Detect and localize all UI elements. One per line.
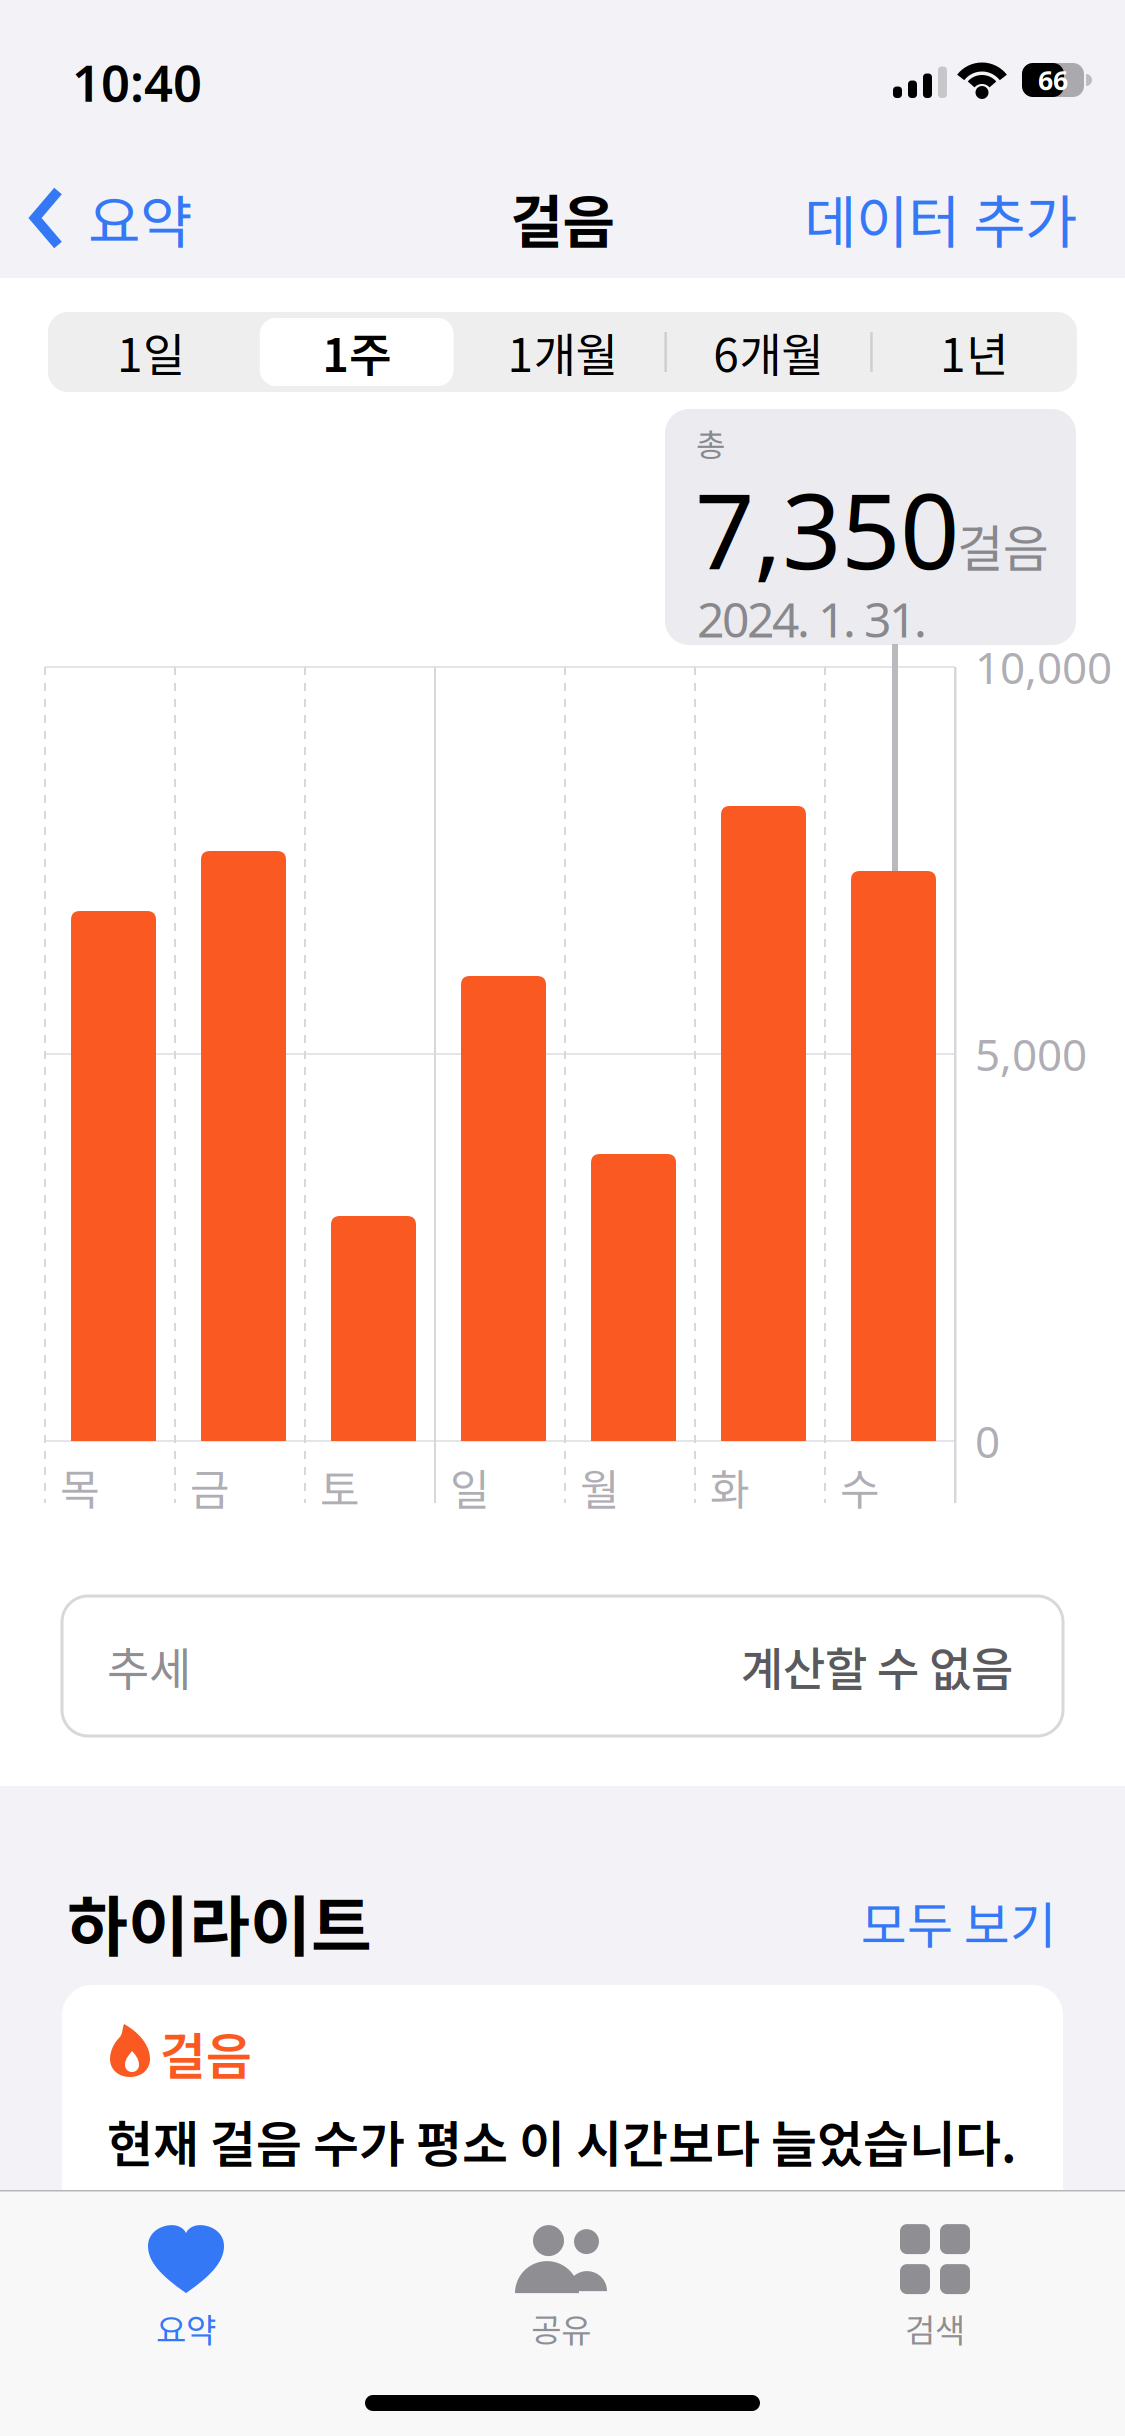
staticText: 6개월 [713,319,823,385]
staticText: 0 [975,1412,1000,1470]
staticText: 요약 [156,2304,216,2352]
staticText: 총 [696,420,725,466]
staticText: 화 [710,1456,750,1518]
staticText: 모두 보기 [861,1886,1056,1958]
staticText: 1일 [117,319,185,385]
button[interactable]: 추세 [62,1596,1063,1736]
staticText: 일 [450,1456,490,1518]
staticText: 2024. 1. 31. [697,587,927,651]
staticText: 1년 [940,319,1008,385]
staticText: 현재 걸음 수가 평소 이 시간보다 늘었습니다. [107,2105,1017,2177]
button[interactable]: 뒤로 요약 [30,172,192,264]
staticText: 걸음 [510,177,614,259]
staticText: 10:40 [72,48,202,116]
button[interactable]: 데이터 추가 [717,172,1077,264]
button[interactable]: 1년 [871,312,1077,392]
button[interactable]: 6개월 [665,312,871,392]
button[interactable]: 모두 보기 [756,1872,1056,1972]
staticText: 추세 [107,1633,191,1699]
staticText: 1개월 [507,319,617,385]
staticText: 수 [840,1456,880,1518]
staticText: 10,000 [975,638,1112,696]
staticText: 토 [320,1456,360,1518]
button[interactable]: 공유 [441,2208,681,2368]
button[interactable]: 1일 [48,312,254,392]
button[interactable]: 1주 [254,312,460,392]
staticText: 1주 [322,319,391,385]
staticText: 5,000 [975,1025,1087,1083]
staticText: 월 [580,1456,620,1518]
staticText: 검색 [905,2304,965,2352]
staticText: 66 [1038,62,1068,98]
staticText: 데이터 추가 [804,177,1077,259]
staticText: 목 [60,1456,100,1518]
button[interactable]: 1개월 [460,312,665,392]
button[interactable]: 걸음 [62,1985,1063,2436]
staticText: 금 [190,1456,230,1518]
staticText: 요약 [88,177,192,259]
staticText: 걸음 [160,2017,252,2089]
button[interactable]: 검색 [815,2208,1055,2368]
staticText: 공유 [531,2304,591,2352]
staticText: 하이라이트 [67,1874,372,1970]
staticText: 걸음 [957,509,1049,581]
staticText: 계산할 수 없음 [741,1633,1013,1699]
staticText: 7,350 [695,460,959,598]
button[interactable]: 요약 [66,2208,306,2368]
